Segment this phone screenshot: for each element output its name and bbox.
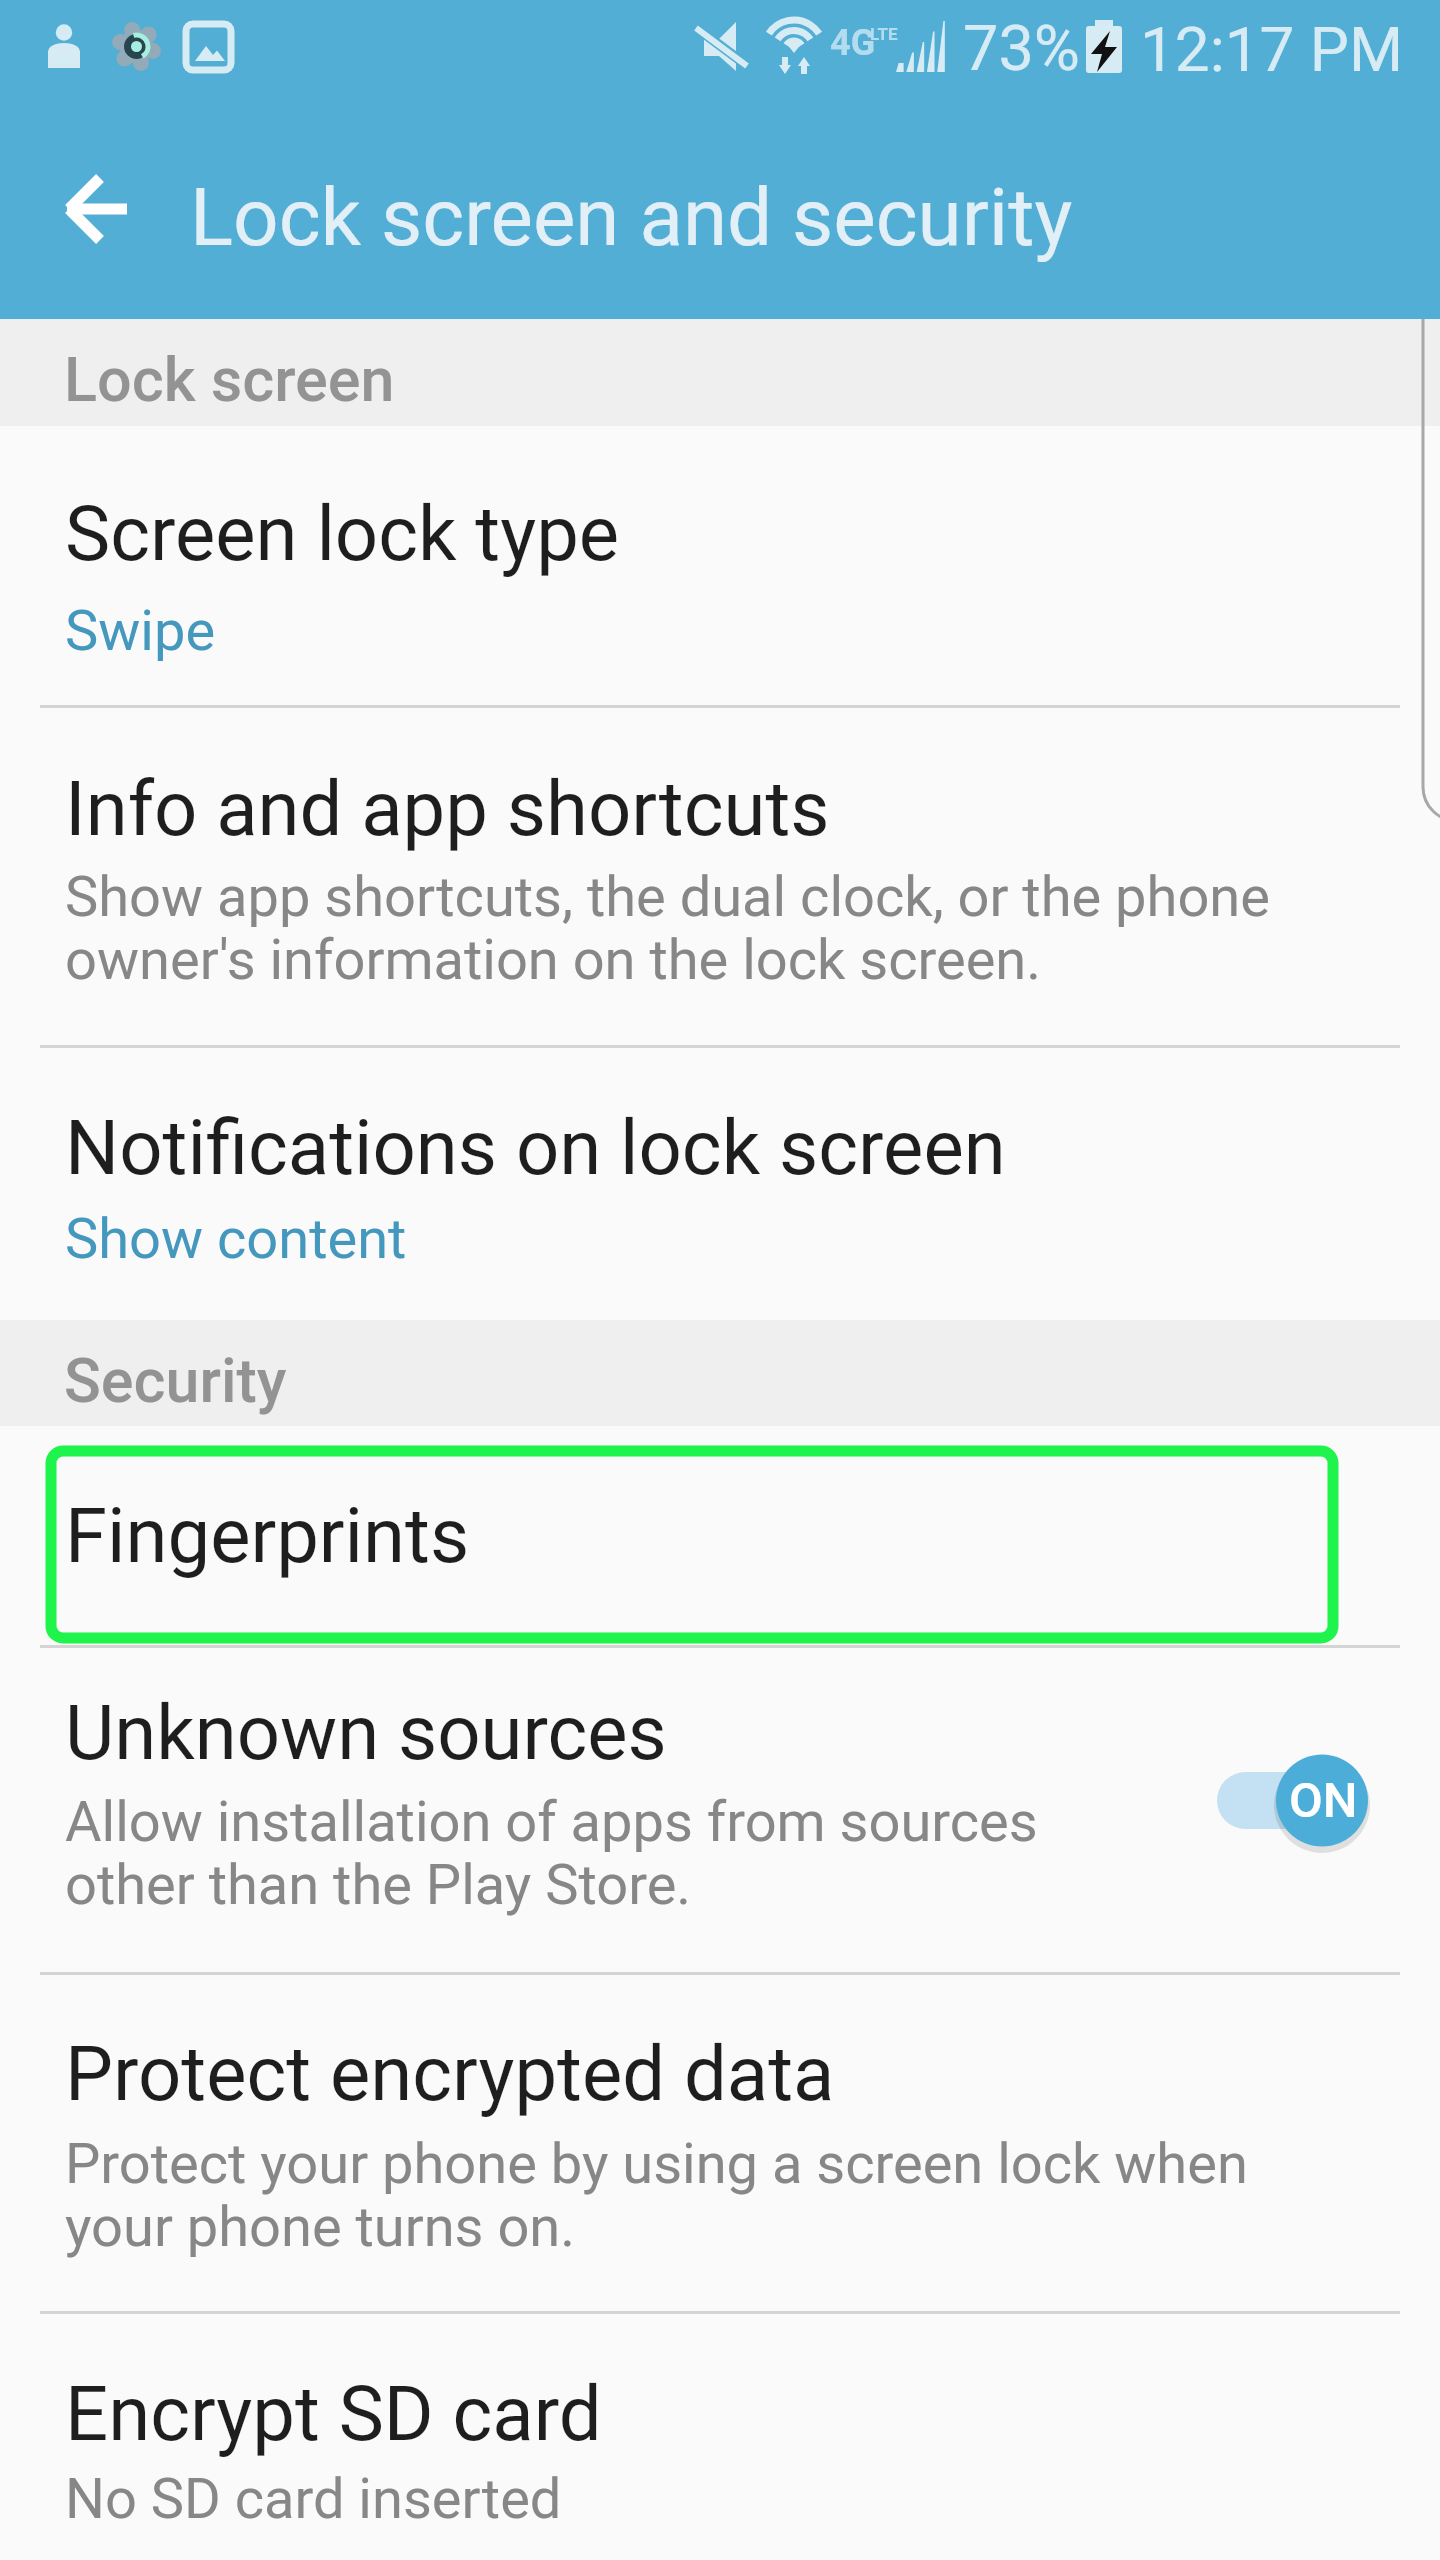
- button[interactable]: Unknown sources: [0, 1648, 1440, 1972]
- staticText: Allow installation of apps from sources …: [65, 1789, 1038, 1918]
- staticText: Fingerprints: [65, 1491, 470, 1580]
- staticText: Encrypt SD card: [65, 2369, 602, 2458]
- button[interactable]: Screen lock type: [0, 426, 1440, 705]
- button[interactable]: Back: [37, 149, 157, 269]
- button[interactable]: Notifications on lock screen: [0, 1048, 1440, 1320]
- staticText: Security: [64, 1345, 287, 1416]
- staticText: ON: [1289, 1772, 1358, 1829]
- staticText: Notifications on lock screen: [65, 1103, 1006, 1192]
- button[interactable]: Encrypt SD card: [0, 2314, 1440, 2560]
- staticText: Show content: [65, 1206, 407, 1272]
- staticText: Unknown sources: [65, 1688, 667, 1777]
- staticText: Show app shortcuts, the dual clock, or t…: [65, 864, 1270, 993]
- button[interactable]: Fingerprints: [0, 1426, 1440, 1645]
- staticText: 12:17 PM: [1140, 13, 1404, 86]
- staticText: No SD card inserted: [65, 2466, 562, 2532]
- button[interactable]: Protect encrypted data: [0, 1975, 1440, 2311]
- staticText: 4G: [830, 22, 876, 64]
- staticText: Screen lock type: [65, 489, 620, 578]
- staticText: LTE: [870, 24, 898, 44]
- button[interactable]: Info and app shortcuts: [0, 708, 1440, 1045]
- button[interactable]: Unknown sources, on: [1207, 1754, 1387, 1854]
- staticText: 73%: [963, 12, 1080, 86]
- staticText: Lock screen and security: [190, 171, 1073, 265]
- staticText: Info and app shortcuts: [65, 764, 830, 853]
- staticText: Protect your phone by using a screen loc…: [65, 2131, 1248, 2260]
- staticText: Protect encrypted data: [65, 2029, 835, 2118]
- staticText: Swipe: [65, 598, 216, 664]
- staticText: Lock screen: [64, 344, 395, 415]
